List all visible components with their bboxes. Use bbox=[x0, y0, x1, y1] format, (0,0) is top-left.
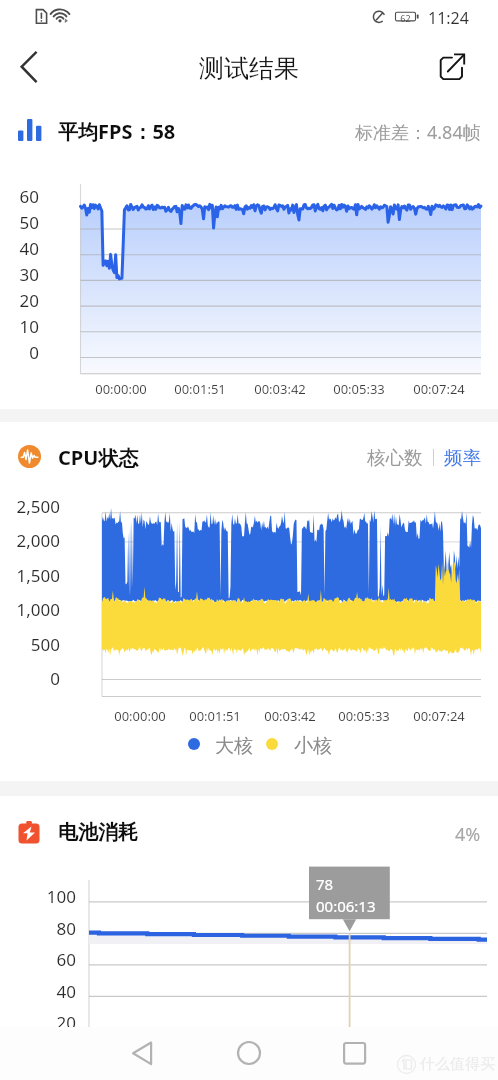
staticText: 2,500 bbox=[0, 495, 60, 518]
button[interactable]: Back bbox=[6, 45, 52, 91]
staticText: 平均FPS：58 bbox=[58, 118, 176, 145]
staticText: 50 bbox=[0, 211, 39, 234]
staticText: 1,500 bbox=[0, 564, 60, 587]
staticText: 0 bbox=[0, 341, 39, 364]
staticText: 80 bbox=[0, 917, 76, 940]
staticText: 11:24 bbox=[428, 7, 469, 29]
staticText: 60 bbox=[0, 948, 76, 971]
button[interactable]: Recents bbox=[339, 1037, 371, 1069]
staticText: 00:00:00 bbox=[100, 707, 180, 725]
staticText: 00:01:51 bbox=[175, 707, 255, 725]
staticText: 00:06:13 bbox=[316, 896, 376, 916]
staticText: 00:07:24 bbox=[399, 707, 479, 725]
staticText: 4% bbox=[455, 822, 481, 847]
staticText: 78 bbox=[316, 874, 334, 894]
staticText: 核心数 bbox=[367, 446, 423, 469]
staticText: 什么值得买 bbox=[420, 1055, 495, 1074]
staticText: 00:03:42 bbox=[250, 707, 330, 725]
button[interactable]: 频率 bbox=[444, 446, 481, 469]
button[interactable]: 核心数 bbox=[367, 446, 423, 469]
staticText: 大核 bbox=[215, 734, 253, 758]
staticText: 1,000 bbox=[0, 598, 60, 621]
staticText: 标准差：4.84帧 bbox=[355, 120, 481, 145]
staticText: 00:03:42 bbox=[240, 380, 320, 398]
staticText: 2,000 bbox=[0, 529, 60, 552]
staticText: 10 bbox=[0, 315, 39, 338]
staticText: 00:05:33 bbox=[324, 707, 404, 725]
staticText: 60 bbox=[0, 185, 39, 208]
button[interactable]: Back bbox=[126, 1037, 158, 1069]
staticText: 小核 bbox=[294, 734, 332, 758]
staticText: CPU状态 bbox=[58, 444, 139, 471]
staticText: 电池消耗 bbox=[58, 820, 138, 845]
staticText: 00:07:24 bbox=[399, 380, 479, 398]
staticText: 500 bbox=[0, 633, 60, 656]
staticText: 00:00:00 bbox=[81, 380, 161, 398]
staticText: 0 bbox=[0, 667, 60, 690]
button[interactable]: Home bbox=[233, 1037, 265, 1069]
staticText: 62 bbox=[395, 12, 416, 24]
staticText: 00:01:51 bbox=[160, 380, 240, 398]
staticText: 00:05:33 bbox=[319, 380, 399, 398]
button[interactable]: Share bbox=[434, 50, 470, 86]
staticText: 20 bbox=[0, 289, 39, 312]
staticText: 40 bbox=[0, 237, 39, 260]
staticText: 100 bbox=[0, 885, 76, 908]
staticText: 测试结果 bbox=[0, 53, 498, 84]
staticText: 频率 bbox=[444, 446, 481, 469]
staticText: 40 bbox=[0, 980, 76, 1003]
staticText: 30 bbox=[0, 263, 39, 286]
staticText: 20 bbox=[0, 1011, 76, 1034]
